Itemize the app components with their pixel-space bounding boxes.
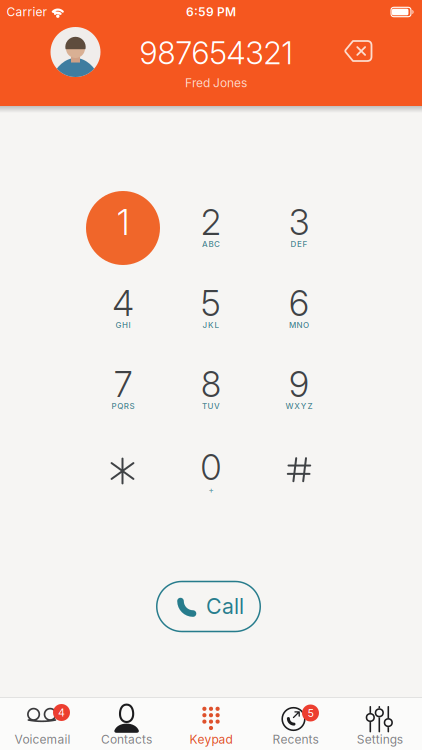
button[interactable]: Voicemail — [0, 697, 84, 750]
staticText: 8 — [201, 364, 221, 405]
button[interactable]: Keypad — [169, 697, 253, 750]
button[interactable]: 3 — [262, 191, 336, 265]
staticText: JKL — [202, 320, 220, 330]
staticText: GHI — [115, 320, 131, 330]
staticText: ABC — [202, 239, 220, 249]
button[interactable]: 1 — [86, 191, 160, 265]
staticText: 6 — [289, 283, 309, 324]
staticText: 0 — [200, 447, 221, 488]
staticText: 6:59 PM — [186, 5, 236, 19]
staticText: TUV — [202, 401, 220, 411]
staticText: 4 — [58, 706, 65, 719]
staticText: 7 — [114, 364, 132, 405]
staticText: Keypad — [189, 732, 232, 747]
staticText: 4 — [112, 283, 133, 324]
button[interactable]: 9 — [262, 353, 336, 427]
button[interactable]: Contacts — [85, 697, 169, 750]
button[interactable]: Call — [156, 581, 261, 632]
staticText: Voicemail — [14, 732, 70, 747]
staticText: 5 — [307, 707, 313, 719]
staticText: DEF — [290, 239, 308, 249]
button[interactable]: 0 — [174, 433, 248, 507]
staticText: PQRS — [112, 401, 134, 411]
staticText: 2 — [201, 202, 221, 243]
button[interactable]: Settings — [338, 697, 422, 750]
staticText: 987654321 — [139, 35, 292, 71]
button[interactable]: Contact photo — [50, 27, 100, 77]
button[interactable]: 8 — [174, 353, 248, 427]
staticText: Carrier — [6, 5, 47, 19]
staticText: Recents — [272, 732, 318, 747]
button[interactable]: 2 — [174, 191, 248, 265]
button[interactable]: 5 — [174, 272, 248, 346]
staticText: 9 — [289, 364, 309, 405]
staticText: WXYZ — [286, 401, 312, 411]
staticText: Fred Jones — [185, 76, 247, 90]
button[interactable]: Delete — [336, 33, 380, 69]
button[interactable]: 6 — [262, 272, 336, 346]
staticText: 5 — [201, 283, 221, 324]
staticText: MNO — [289, 320, 309, 330]
staticText: 3 — [289, 202, 309, 243]
button[interactable]: Pound — [262, 433, 336, 507]
button[interactable]: 4 — [86, 272, 160, 346]
staticText: 1 — [117, 202, 129, 243]
staticText: Call — [206, 594, 244, 619]
button[interactable]: 7 — [86, 353, 160, 427]
button[interactable]: Recents — [253, 697, 337, 750]
staticText: Settings — [357, 732, 403, 747]
button[interactable]: Star — [85, 434, 159, 508]
staticText: Contacts — [101, 732, 152, 747]
staticText: + — [208, 485, 213, 495]
